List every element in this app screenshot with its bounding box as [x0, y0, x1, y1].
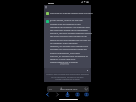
- staticText: histoires, les galeries sont utilises po…: [50, 45, 89, 48]
- staticText: ChatGPT version du 20 juillet: [55, 78, 80, 80]
- staticText: Je suis desole, mais je ne suis pas: [50, 19, 83, 22]
- button[interactable]: Tabs: [83, 91, 90, 98]
- staticText: pierre qui ont ete petrifies par un sort…: [50, 39, 91, 42]
- staticText: esprits malveillants, mais dans: [50, 52, 81, 55]
- staticText: chat.openai.com: [59, 88, 78, 91]
- staticText: des etres humains faits d'argile ou de: [50, 35, 87, 38]
- staticText: AA: [49, 88, 52, 91]
- staticText: ChatGPT peut produire des informations i…: [46, 73, 89, 75]
- button[interactable]: Share: [64, 91, 71, 98]
- staticText: d'autres, ils peuvent etre dangereux et: [50, 55, 88, 58]
- staticText: proteger les communautes contre les: [50, 48, 87, 51]
- button[interactable]: [45, 68, 90, 73]
- staticText: un sortilege. Dans certaines: [50, 42, 78, 45]
- staticText: utilisation de masques. Les galeries son…: [50, 26, 90, 29]
- button[interactable]: Je suis desole, mais je ne suis pas: [44, 18, 91, 68]
- staticText: des creatures fictives de la mythologie: [50, 29, 88, 32]
- staticText: familier avec les galeries et leur: [50, 23, 81, 26]
- button[interactable]: Forward: [54, 91, 61, 98]
- staticText: Try again: [61, 63, 69, 65]
- staticText: sur les personnes, les lieux ou les fait…: [51, 76, 84, 78]
- staticText: 20:07: [48, 1, 55, 4]
- staticText: d'informations sur la galerie: [50, 61, 78, 64]
- staticText: grecque, qui sont souvent decrites comme: [50, 32, 92, 35]
- button[interactable]: Back: [44, 91, 51, 98]
- staticText: violents. Si vous avez plus: [50, 58, 76, 61]
- button[interactable]: Pourquoi les galeries portent elles masq…: [44, 11, 91, 18]
- button[interactable]: Try again: [60, 63, 69, 65]
- staticText: Pourquoi les galeries portent elles masq…: [50, 12, 93, 15]
- button[interactable]: Bookmarks: [74, 91, 81, 98]
- button[interactable]: AA: [47, 86, 89, 92]
